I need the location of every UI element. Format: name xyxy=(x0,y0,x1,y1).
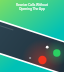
staticText: Receive Calls Without Opening The App xyxy=(4,3,60,11)
